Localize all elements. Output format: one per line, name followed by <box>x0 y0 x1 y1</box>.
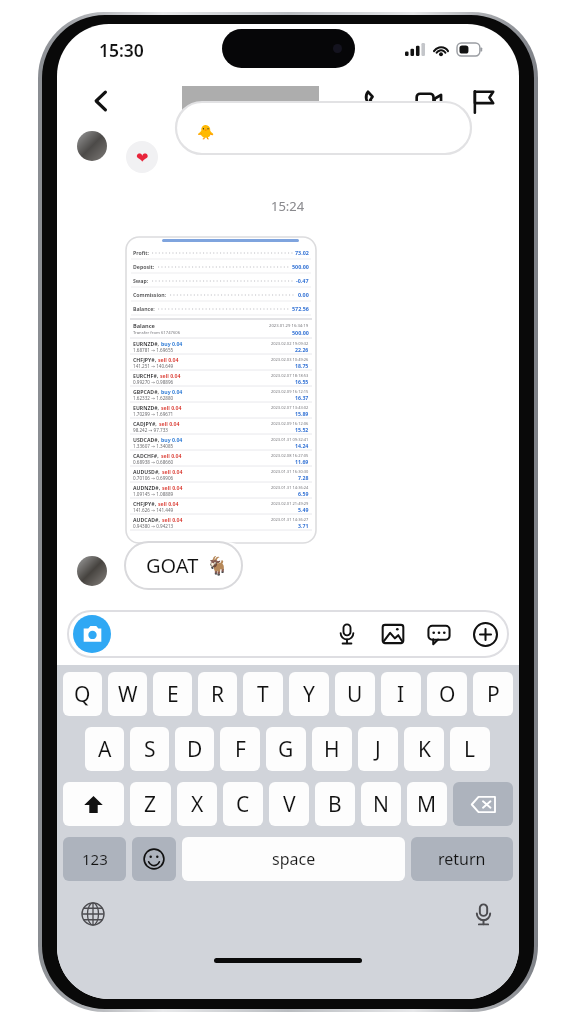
staticText: 123 <box>82 849 108 869</box>
staticText: 0.70106 → 0.69906 <box>133 475 174 481</box>
button[interactable]: 123 <box>63 837 126 881</box>
button[interactable]: Change keyboard <box>75 896 111 932</box>
button[interactable]: A <box>85 727 124 771</box>
staticText: P <box>487 680 500 709</box>
button[interactable]: K <box>404 727 444 771</box>
button[interactable]: I <box>381 672 421 716</box>
button[interactable]: Photo library <box>375 616 411 652</box>
staticText: CHFJPY#, <box>133 356 158 363</box>
staticText: 73.02 <box>295 249 309 256</box>
button[interactable]: R <box>198 672 237 716</box>
button[interactable]: Shift <box>63 782 124 826</box>
staticText: Commission: <box>133 291 167 298</box>
button[interactable]: Back <box>81 81 121 121</box>
staticText: 1.33607 → 1.34085 <box>133 443 174 449</box>
staticText: Q <box>74 680 91 709</box>
staticText: 2023.02.08 16:27:05 <box>271 453 309 458</box>
staticText: U <box>347 680 363 709</box>
button[interactable]: B <box>315 782 355 826</box>
staticText: sell 0.04 <box>162 516 183 523</box>
staticText: S <box>144 735 156 764</box>
staticText: buy 0.04 <box>161 340 183 347</box>
button[interactable]: Stickers <box>421 616 457 652</box>
staticText: 2023.02.09 16:12:06 <box>271 421 309 426</box>
staticText: 16.55 <box>295 378 309 385</box>
staticText: 15.89 <box>295 410 309 417</box>
staticText: ❤️ <box>136 149 149 166</box>
staticText: C <box>236 790 250 819</box>
staticText: B <box>328 790 342 819</box>
button[interactable]: ❤️ <box>126 141 158 173</box>
staticText: 98.242 → 97.733 <box>133 427 168 433</box>
staticText: sell 0.04 <box>161 404 182 411</box>
button[interactable]: C <box>223 782 263 826</box>
staticText: 2023.01.31 14:36:24 <box>271 485 309 490</box>
staticText: 2023.02.03 10:49:26 <box>271 357 309 362</box>
staticText: space <box>272 848 316 870</box>
staticText: 22.26 <box>295 346 309 353</box>
staticText: 0.94380 → 0.94213 <box>133 523 174 529</box>
button[interactable]: Z <box>130 782 171 826</box>
staticText: 500.00 <box>292 329 309 336</box>
button[interactable]: P <box>473 672 513 716</box>
staticText: 2023.02.09 16:12:15 <box>271 389 309 394</box>
button[interactable]: G <box>266 727 306 771</box>
button[interactable]: GOAT <box>125 542 250 589</box>
staticText: 2023.02.07 18:18:53 <box>271 373 309 378</box>
button[interactable]: More options <box>467 616 503 652</box>
staticText: sell 0.04 <box>158 356 179 363</box>
button[interactable]: Q <box>63 672 102 716</box>
button[interactable]: L <box>450 727 490 771</box>
staticText: GBPCAD#, <box>133 388 161 395</box>
staticText: Y <box>303 680 315 709</box>
button[interactable]: Video call <box>409 81 449 121</box>
button[interactable]: O <box>427 672 467 716</box>
staticText: 🐥 <box>197 124 215 140</box>
button[interactable]: Camera <box>73 615 111 653</box>
button[interactable]: Dictation <box>465 896 501 932</box>
button[interactable]: Profit: <box>126 237 316 543</box>
staticText: AUDUSD#, <box>133 468 162 475</box>
button[interactable]: Backspace <box>453 782 513 826</box>
staticText: 2023.02.02 19:09:32 <box>271 341 309 346</box>
button[interactable]: T <box>243 672 283 716</box>
button[interactable]: E <box>153 672 192 716</box>
button[interactable]: N <box>361 782 401 826</box>
button[interactable]: X <box>177 782 217 826</box>
button[interactable]: Call <box>355 81 395 121</box>
staticText: 1.68781 → 1.69655 <box>133 347 174 353</box>
button[interactable]: D <box>175 727 214 771</box>
staticText: 15:30 <box>99 38 144 62</box>
button[interactable]: M <box>407 782 447 826</box>
staticText: 6.59 <box>298 490 309 497</box>
staticText: 0.68938 → 0.68660 <box>133 459 174 465</box>
staticText: N <box>373 790 389 819</box>
staticText: M <box>417 790 437 819</box>
button[interactable]: Y <box>289 672 329 716</box>
staticText: 2023.01.31 14:36:27 <box>271 517 309 522</box>
button[interactable]: space <box>182 837 405 881</box>
button[interactable]: W <box>108 672 147 716</box>
button[interactable]: Flag <box>463 81 503 121</box>
button[interactable]: S <box>130 727 169 771</box>
staticText: H <box>324 735 340 764</box>
staticText: 15.52 <box>295 426 309 433</box>
staticText: 15:24 <box>271 197 305 215</box>
button[interactable]: Voice message <box>329 616 365 652</box>
staticText: G <box>278 735 294 764</box>
button[interactable]: J <box>358 727 398 771</box>
button[interactable]: V <box>269 782 309 826</box>
staticText: V <box>283 790 296 819</box>
staticText: CADCHF#, <box>133 452 161 459</box>
staticText: R <box>211 680 225 709</box>
button[interactable]: Emoji <box>132 837 176 881</box>
staticText: 1.09145 → 1.08889 <box>133 491 174 497</box>
staticText: EURNZD#, <box>133 340 161 347</box>
button[interactable]: return <box>411 837 513 881</box>
staticText: A <box>98 735 112 764</box>
button[interactable]: U <box>335 672 375 716</box>
staticText: 18.75 <box>295 362 309 369</box>
button[interactable]: H <box>312 727 352 771</box>
staticText: D <box>187 735 203 764</box>
button[interactable]: F <box>220 727 260 771</box>
